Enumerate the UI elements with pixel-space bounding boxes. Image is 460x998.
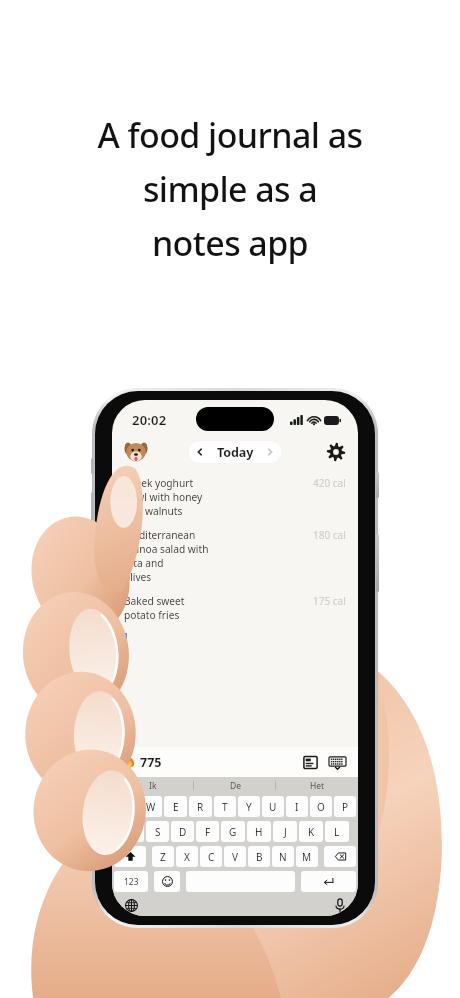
button[interactable]: E [164,796,187,817]
staticText: 180 cal [313,528,346,542]
button[interactable]: C [200,846,222,867]
staticText: X [184,850,190,864]
button[interactable]: X [176,846,198,867]
button[interactable]: S [146,821,169,842]
button[interactable]: Q [114,796,137,817]
button[interactable]: De [194,777,276,794]
staticText: D [179,825,187,839]
staticText: Het [310,780,325,792]
staticText: A [129,825,136,839]
button[interactable]: K [299,821,323,842]
button[interactable]: Ik [112,777,194,794]
staticText: Greek yoghurt bowl with honey and walnut… [124,476,215,518]
button[interactable]: P [334,796,356,817]
staticText: V [232,850,238,864]
button[interactable]: T [214,796,236,817]
staticText: P [342,800,349,814]
staticText: T [222,800,228,814]
staticText: De [230,780,241,792]
button[interactable]: U [262,796,284,817]
staticText: A food journal as simple as a notes app [30,112,430,266]
button[interactable]: Attach photo [303,755,318,770]
button[interactable]: A [121,821,144,842]
button[interactable]: Hide keyboard [329,756,346,770]
button[interactable]: Profile [124,440,148,464]
button[interactable]: Y [238,796,260,817]
button[interactable]: 775 [124,754,162,771]
button[interactable]: Z [152,846,174,867]
button[interactable]: 123 [114,871,148,892]
staticText: I [295,800,299,814]
button[interactable]: I [286,796,308,817]
button[interactable]: F [196,821,219,842]
staticText: K [308,825,315,839]
staticText: 20:02 [132,411,167,429]
button[interactable]: V [224,846,246,867]
button[interactable]: Voice input [335,898,345,912]
button[interactable]: Greek yoghurt bowl with honey and walnut… [112,476,358,518]
staticText: Ik [149,780,157,792]
button[interactable]: Shift [114,846,146,867]
staticText: Y [246,800,252,814]
staticText: 420 cal [313,476,346,490]
button[interactable]: W [139,796,162,817]
button[interactable]: Het [276,777,358,794]
staticText: R [197,800,204,814]
button[interactable]: Settings [326,442,346,462]
button[interactable]: N [272,846,294,867]
button[interactable]: O [310,796,332,817]
button[interactable]: L [325,821,349,842]
staticText: U [269,800,277,814]
button[interactable]: G [221,821,245,842]
staticText: B [256,850,263,864]
staticText: N [279,850,287,864]
button[interactable]: R [189,796,212,817]
staticText: O [317,800,325,814]
staticText: M [302,850,312,864]
staticText: J [284,825,287,839]
button[interactable]: Baked sweet potato fries [112,594,358,622]
button[interactable]: Mediterranean quinoa salad with feta and… [112,528,358,584]
staticText: Mediterranean quinoa salad with feta and… [124,528,215,584]
staticText: Z [160,850,166,864]
button[interactable]: J [273,821,297,842]
button[interactable]: Enter [301,871,356,892]
button[interactable]: Change language [125,899,138,912]
button[interactable]: B [248,846,270,867]
staticText: 123 [124,876,139,888]
staticText: C [208,850,215,864]
staticText: E [173,800,179,814]
button[interactable]: Emoji [154,871,180,892]
button[interactable]: H [247,821,271,842]
staticText: H [255,825,263,839]
button[interactable]: D [171,821,194,842]
staticText: W [146,800,156,814]
staticText: S [155,825,161,839]
staticText: 775 [140,754,162,771]
button[interactable]: Today [189,441,281,463]
button[interactable]: Backspace [324,846,356,867]
staticText: F [205,825,211,839]
button[interactable]: M [296,846,318,867]
staticText: Baked sweet potato fries [124,594,215,622]
staticText: 175 cal [313,594,346,608]
staticText: L [334,825,340,839]
staticText: Today [217,444,254,461]
staticText: G [229,825,237,839]
